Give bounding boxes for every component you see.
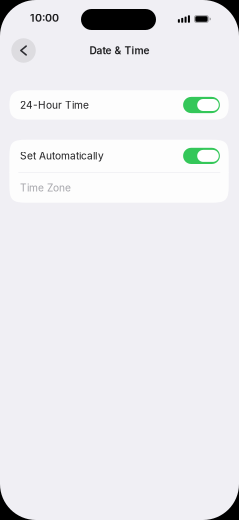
button[interactable]: Back bbox=[11, 38, 36, 63]
staticText: 24-Hour Time bbox=[20, 99, 89, 111]
staticText: 10:00 bbox=[30, 11, 59, 24]
staticText: Date & Time bbox=[89, 44, 149, 57]
button[interactable]: Time Zone bbox=[9, 173, 229, 203]
button[interactable]: 24-Hour Time bbox=[9, 90, 229, 120]
staticText: Time Zone bbox=[20, 182, 71, 194]
staticText: Set Automatically bbox=[20, 150, 104, 162]
button[interactable]: Set Automatically bbox=[9, 140, 229, 172]
